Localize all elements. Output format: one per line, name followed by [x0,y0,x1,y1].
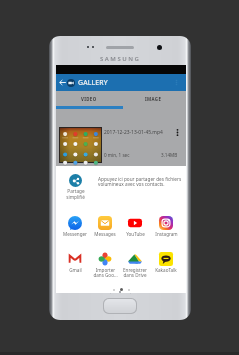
button[interactable]: 2017-12-23-13-01-45.mp4 [56,109,186,166]
other: Item options [173,128,182,137]
button[interactable]: VIDEO [56,91,121,106]
button[interactable]: Partage [61,174,90,200]
button[interactable]: Messenger [60,216,90,237]
button[interactable]: KakaoTalk [151,252,181,273]
staticText: YouTube [126,231,145,237]
staticText: 2017-12-23-13-01-45.mp4 [104,129,163,136]
staticText: simplifié [66,194,85,200]
button[interactable]: IMAGE [121,91,186,106]
staticText: IMAGE [145,96,162,102]
button[interactable]: Instagram [151,216,181,237]
staticText: Enregistrer dans Drive [123,267,147,279]
staticText: Messages [94,231,116,237]
button[interactable]: Importer dans Goo... [90,252,120,279]
button[interactable]: YouTube [120,216,150,237]
other: Gallery [67,79,75,87]
staticText: 0 min, 1 sec [104,152,130,158]
staticText: GALLERY [78,78,108,87]
button[interactable]: Messages [90,216,120,237]
button[interactable]: Gmail [60,252,90,273]
staticText: Messenger [63,231,87,237]
staticText: Instagram [155,231,178,237]
staticText: KakaoTalk [155,267,177,273]
button[interactable]: Home [104,299,136,313]
other: Back [59,79,66,86]
staticText: VIDEO [81,96,97,102]
staticText: Gmail [69,267,82,273]
button[interactable]: Back [56,74,186,91]
button[interactable]: Enregistrer dans Drive [120,252,150,279]
staticText: Importer dans Goo... [93,267,118,279]
staticText: Appuyez ici pour partager des fichiers v… [98,176,182,188]
staticText: SAMSUNG [100,55,141,63]
staticText: 3.14MB [161,152,178,158]
staticText: Partage [67,188,85,194]
